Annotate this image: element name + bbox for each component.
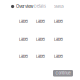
staticText: Label (19, 54, 28, 59)
staticText: Label (36, 54, 45, 59)
staticText: Label (54, 19, 63, 24)
staticText: Label (19, 19, 28, 24)
staticText: Label (36, 19, 45, 24)
staticText: Label (19, 37, 28, 42)
staticText: Details (34, 4, 46, 9)
staticText: Label (36, 37, 45, 42)
staticText: Label (54, 54, 63, 59)
staticText: Status (54, 4, 64, 9)
button[interactable]: Continue (53, 70, 73, 76)
staticText: Label (54, 37, 63, 42)
staticText: Overview (16, 4, 33, 9)
staticText: Continue (55, 71, 70, 75)
